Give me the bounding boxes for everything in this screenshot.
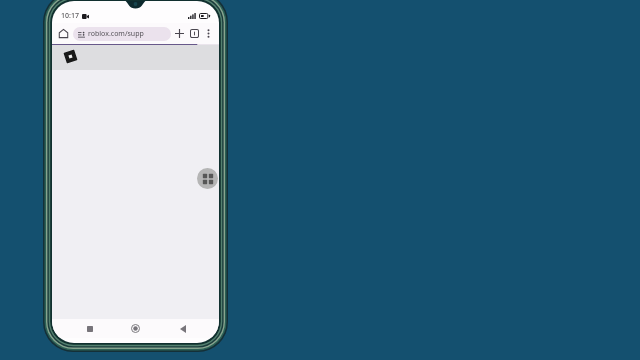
- button[interactable]: Recent apps: [80, 319, 99, 338]
- button[interactable]: New tab: [172, 26, 187, 41]
- button[interactable]: More options: [202, 27, 215, 40]
- staticText: roblox.com/supp: [88, 29, 144, 39]
- button[interactable]: Home: [126, 319, 145, 338]
- button[interactable]: roblox.com/supp: [73, 27, 171, 41]
- button[interactable]: Open apps panel: [197, 168, 218, 189]
- button[interactable]: Switch tabs: [187, 26, 202, 41]
- staticText: 10:17: [61, 11, 79, 21]
- button[interactable]: Back: [173, 319, 192, 338]
- button[interactable]: Home page: [56, 26, 71, 41]
